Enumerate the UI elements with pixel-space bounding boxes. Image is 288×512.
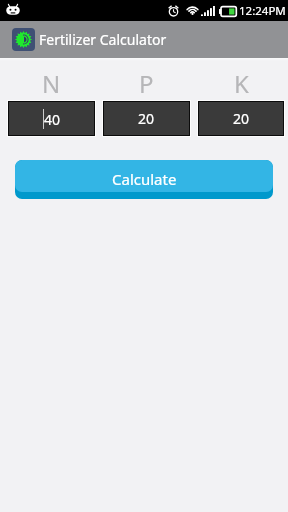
button[interactable]: 40 (9, 102, 94, 135)
staticText: 40 (44, 110, 61, 129)
staticText: 12:24PM (239, 3, 286, 19)
button[interactable]: Fertilizer Calculator app icon (12, 28, 35, 51)
staticText: Calculate (112, 169, 177, 189)
staticText: N (42, 67, 61, 99)
staticText: P (139, 67, 154, 99)
staticText: K (234, 67, 249, 99)
staticText: 20 (138, 109, 155, 128)
button[interactable]: Calculate (15, 160, 273, 199)
button[interactable]: 20 (104, 102, 189, 135)
button[interactable]: 20 (199, 102, 283, 135)
staticText: Fertilizer Calculator (39, 30, 167, 49)
staticText: 20 (233, 109, 250, 128)
